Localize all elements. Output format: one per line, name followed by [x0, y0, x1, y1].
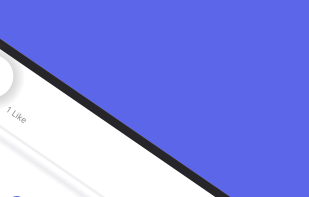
button[interactable]: Social profile screen on a tilted phone	[0, 0, 309, 197]
button[interactable]: Like	[0, 0, 40, 40]
